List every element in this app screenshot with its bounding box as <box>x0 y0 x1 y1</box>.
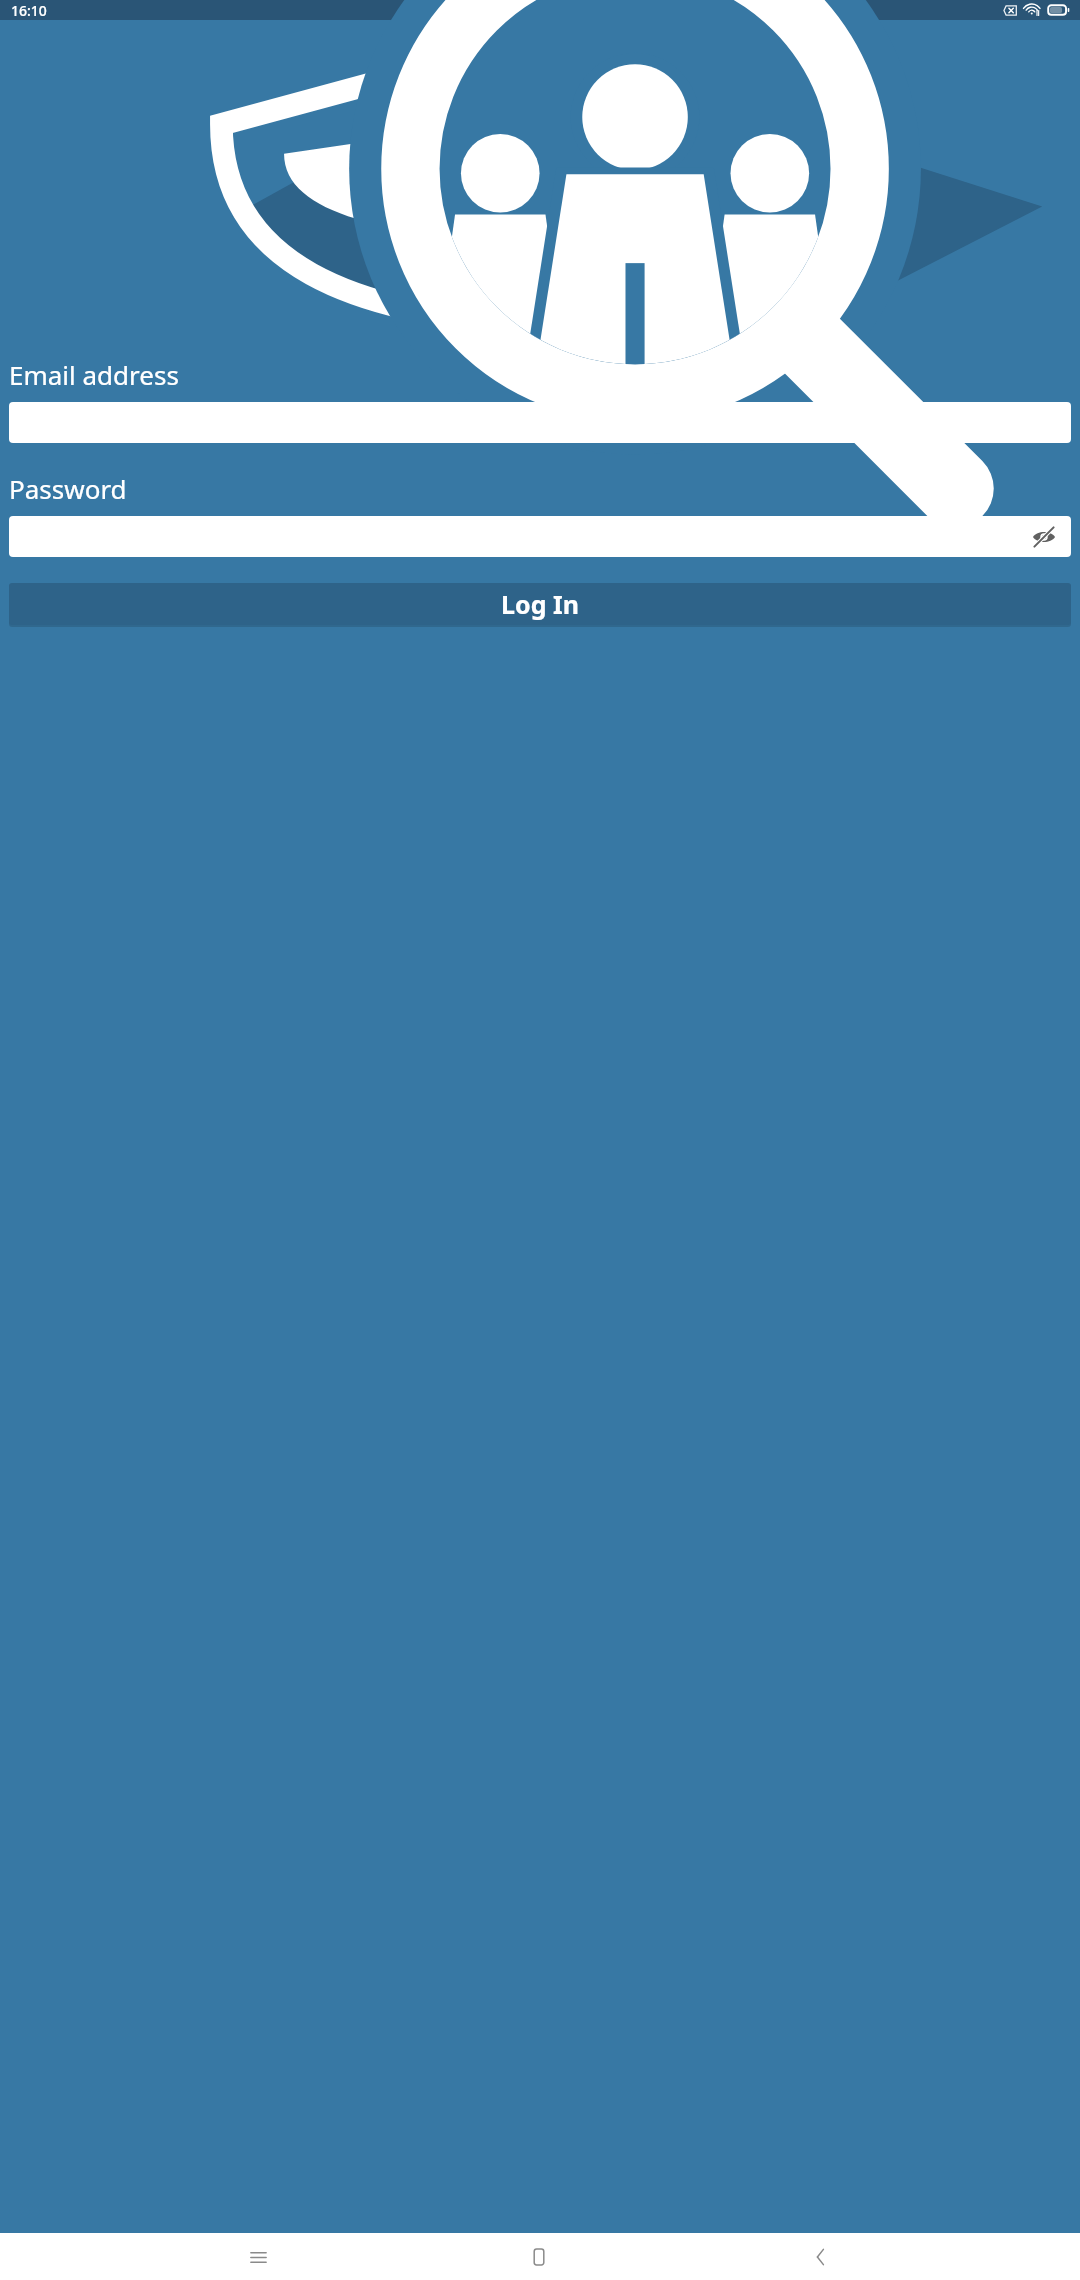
staticText: Log In <box>501 587 579 621</box>
button[interactable]: Show password <box>1031 524 1057 550</box>
button[interactable]: Log In <box>9 583 1071 625</box>
button[interactable]: Back <box>798 2234 844 2280</box>
button[interactable]: Recent apps <box>235 2234 281 2280</box>
staticText: Password <box>9 471 127 506</box>
button[interactable]: Show password <box>9 516 1071 557</box>
staticText: 16:10 <box>11 1 47 20</box>
staticText: Email address <box>9 357 179 392</box>
button[interactable]: Home <box>516 2234 562 2280</box>
